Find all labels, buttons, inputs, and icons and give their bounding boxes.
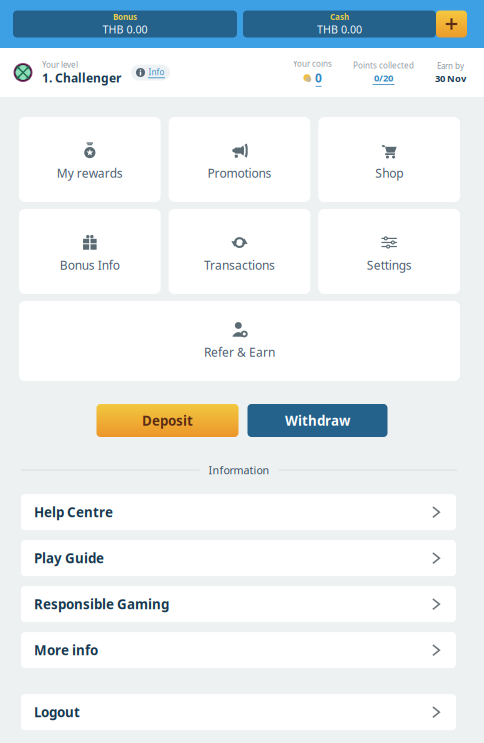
staticText: More info bbox=[34, 641, 98, 659]
staticText: THB 0.00 bbox=[317, 22, 362, 36]
staticText: Shop bbox=[375, 165, 403, 181]
button[interactable]: Info bbox=[131, 64, 170, 80]
button[interactable]: My rewards bbox=[19, 117, 161, 202]
staticText: Play Guide bbox=[34, 549, 104, 567]
staticText: THB 0.00 bbox=[102, 22, 147, 36]
button[interactable]: Cash bbox=[243, 10, 436, 37]
staticText: Promotions bbox=[207, 165, 271, 181]
button[interactable]: Logout bbox=[21, 694, 456, 730]
staticText: Your coins bbox=[293, 58, 332, 69]
staticText: Withdraw bbox=[285, 412, 350, 429]
button[interactable]: Withdraw bbox=[247, 404, 387, 437]
button[interactable]: More info bbox=[21, 632, 456, 668]
staticText: Transactions bbox=[204, 257, 275, 273]
button[interactable]: Help Centre bbox=[21, 494, 456, 530]
button[interactable]: Promotions bbox=[169, 117, 310, 202]
staticText: Settings bbox=[367, 257, 412, 273]
staticText: Earn by bbox=[437, 60, 464, 71]
staticText: 0/20 bbox=[374, 72, 393, 84]
staticText: Info bbox=[148, 67, 164, 77]
staticText: 30 Nov bbox=[435, 72, 466, 84]
staticText: Help Centre bbox=[34, 503, 113, 521]
button[interactable]: Add funds bbox=[436, 10, 467, 37]
staticText: Your level bbox=[42, 59, 78, 70]
button[interactable]: Responsible Gaming bbox=[21, 586, 456, 622]
button[interactable]: Shop bbox=[318, 117, 460, 202]
button[interactable]: Deposit bbox=[96, 404, 238, 437]
staticText: Information bbox=[208, 463, 269, 477]
staticText: My rewards bbox=[57, 165, 123, 181]
staticText: 1. Challenger bbox=[42, 70, 121, 86]
button[interactable]: Refer & Earn bbox=[19, 301, 460, 381]
staticText: Bonus Info bbox=[60, 257, 120, 273]
button[interactable]: Transactions bbox=[169, 209, 310, 294]
staticText: Responsible Gaming bbox=[34, 595, 169, 613]
button[interactable]: Settings bbox=[318, 209, 460, 294]
staticText: 0 bbox=[315, 70, 322, 86]
button[interactable]: Bonus Info bbox=[19, 209, 161, 294]
staticText: Logout bbox=[34, 703, 80, 721]
button[interactable]: Bonus bbox=[13, 10, 237, 37]
staticText: Bonus bbox=[113, 12, 137, 22]
staticText: Points collected bbox=[353, 60, 414, 71]
staticText: Cash bbox=[330, 12, 349, 22]
staticText: Deposit bbox=[142, 412, 193, 429]
button[interactable]: Play Guide bbox=[21, 540, 456, 576]
staticText: Refer & Earn bbox=[204, 344, 275, 360]
